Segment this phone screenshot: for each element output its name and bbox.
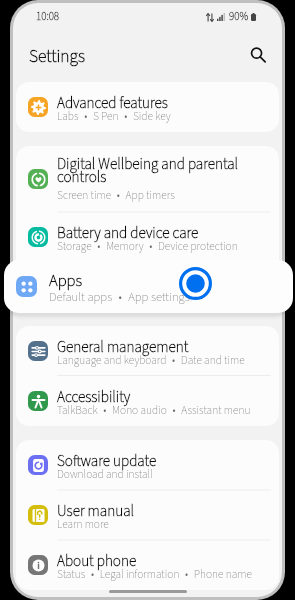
- button[interactable]: Digital Wellbeing and parental controls: [16, 146, 279, 212]
- staticText: Screen time • App timers: [57, 187, 257, 203]
- staticText: User manual: [57, 500, 247, 522]
- staticText: Status • Legal information • Phone name: [57, 566, 257, 582]
- staticText: Apps: [49, 269, 83, 293]
- staticText: TalkBack • Mono audio • Assistant menu: [57, 402, 257, 418]
- button[interactable]: Advanced features: [16, 82, 279, 132]
- button[interactable]: Software update: [16, 440, 279, 490]
- staticText: Default apps • App settings: [57, 288, 257, 304]
- button[interactable]: Battery and device care: [16, 212, 279, 262]
- button[interactable]: General management: [16, 326, 279, 376]
- button[interactable]: Search: [241, 38, 275, 72]
- staticText: Accessibility: [57, 386, 247, 408]
- button[interactable]: Accessibility: [16, 376, 279, 426]
- staticText: Learn more: [57, 516, 257, 532]
- staticText: Settings: [29, 44, 85, 69]
- staticText: Battery and device care: [57, 222, 247, 244]
- staticText: Default apps • App settings: [49, 288, 190, 306]
- staticText: Apps: [57, 272, 247, 294]
- button[interactable]: Apps: [16, 262, 279, 312]
- button[interactable]: About phone: [16, 540, 279, 590]
- staticText: 10:08: [36, 9, 60, 25]
- staticText: Software update: [57, 450, 247, 472]
- staticText: About phone: [57, 550, 247, 572]
- staticText: 90%: [229, 9, 249, 25]
- staticText: Storage • Memory • Device protection: [57, 238, 257, 254]
- staticText: Advanced features: [57, 92, 247, 114]
- staticText: Download and install: [57, 466, 257, 482]
- other: Selected: [179, 267, 212, 300]
- staticText: Digital Wellbeing and parental controls: [57, 153, 247, 188]
- staticText: General management: [57, 336, 247, 358]
- staticText: Language and keyboard • Date and time: [57, 352, 257, 368]
- button[interactable]: Apps: [4, 260, 293, 313]
- staticText: Labs • S Pen • Side key: [57, 108, 257, 124]
- button[interactable]: User manual: [16, 490, 279, 540]
